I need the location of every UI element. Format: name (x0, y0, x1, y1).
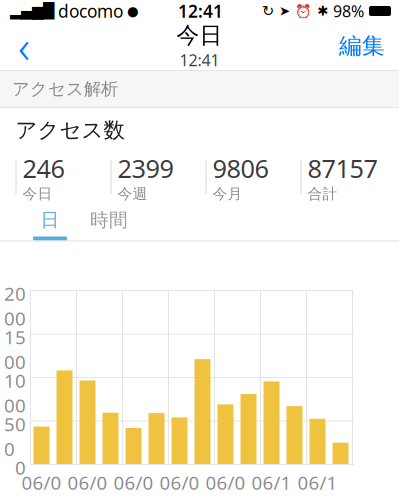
staticText: 今日 (22, 185, 52, 203)
staticText: 0 (15, 455, 26, 480)
staticText: アクセス解析 (12, 78, 118, 100)
button[interactable]: 編集 (325, 24, 399, 68)
staticText: ▂▄▆█ (10, 3, 54, 19)
staticText: 時間 (90, 208, 128, 231)
staticText: 500 (4, 411, 26, 461)
staticText: 06/01 (21, 470, 61, 500)
staticText: ⏰ (295, 3, 312, 19)
staticText: 合計 (307, 185, 337, 203)
staticText: 編集 (339, 32, 385, 60)
staticText: docomo (58, 0, 123, 22)
staticText: 87157 (307, 151, 377, 185)
staticText: 今月 (212, 185, 242, 203)
staticText: アクセス数 (15, 117, 124, 143)
staticText: 1000 (4, 368, 26, 418)
staticText: 06/05 (113, 470, 153, 500)
staticText: 12:41 (178, 0, 223, 22)
staticText: 06/09 (205, 470, 245, 500)
staticText: 1500 (4, 324, 26, 374)
staticText: 12:41 (179, 49, 219, 70)
button[interactable]: Back (0, 24, 48, 68)
staticText: 2399 (117, 151, 173, 185)
staticText: ✱ (317, 3, 328, 18)
staticText: ● (127, 3, 139, 18)
staticText: 9806 (212, 151, 268, 185)
staticText: ↻ (262, 3, 274, 19)
staticText: 今日 (176, 21, 222, 49)
staticText: 246 (22, 151, 64, 185)
button[interactable]: 時間 (78, 208, 140, 240)
staticText: 06/11 (251, 470, 291, 500)
staticText: ➤ (279, 3, 290, 18)
staticText: 98% (333, 0, 364, 22)
staticText: ‹ (18, 16, 30, 76)
button[interactable]: 日 (22, 208, 78, 240)
staticText: 日 (40, 208, 59, 231)
staticText: 06/03 (67, 470, 107, 500)
staticText: 2000 (4, 281, 26, 331)
staticText: 今週 (117, 185, 147, 203)
staticText: 06/13 (297, 470, 337, 500)
staticText: 06/07 (159, 470, 199, 500)
